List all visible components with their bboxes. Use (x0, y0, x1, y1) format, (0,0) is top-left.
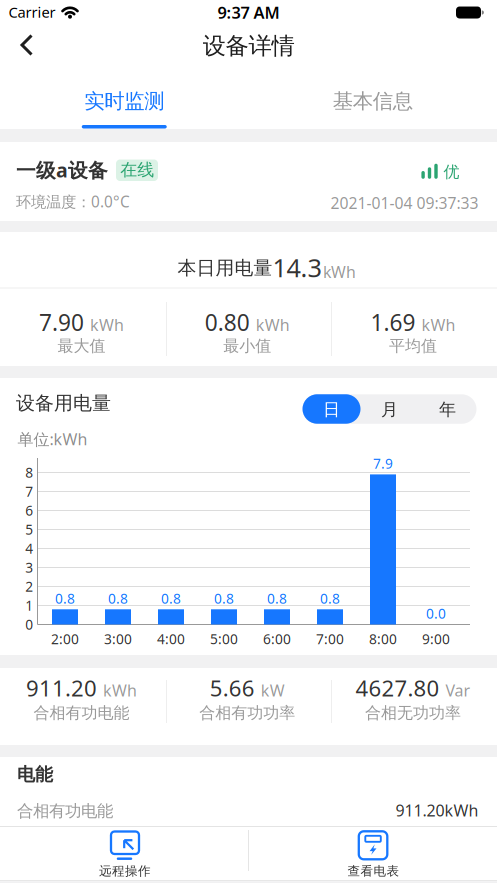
staticText: 5.66 (210, 673, 255, 703)
staticText: 3 (25, 558, 33, 577)
staticText: 日 (323, 399, 340, 420)
staticText: 14.3 (272, 250, 321, 284)
staticText: 0.8 (55, 589, 75, 608)
staticText: kWh (256, 314, 290, 336)
staticText: 远程操作 (99, 863, 151, 879)
staticText: 7.90 (39, 307, 84, 338)
button[interactable]: 年 (418, 394, 476, 424)
staticText: 2 (25, 577, 33, 596)
staticText: 0.8 (214, 589, 234, 608)
staticText: 9:00 (422, 629, 450, 648)
button[interactable]: 日 (302, 394, 360, 424)
staticText: 4627.80 (355, 673, 439, 703)
button[interactable]: Back (6, 28, 50, 62)
staticText: 一级a设备 (16, 157, 108, 183)
staticText: 3:00 (104, 629, 132, 648)
staticText: 合相有功电能 (17, 801, 113, 821)
button[interactable]: 实时监测 (0, 62, 248, 129)
button[interactable]: 月 (360, 394, 418, 424)
staticText: Var (445, 679, 470, 701)
staticText: kWh (90, 314, 124, 336)
staticText: 电能 (17, 763, 53, 786)
staticText: 5 (25, 520, 33, 539)
staticText: kW (261, 679, 285, 701)
button[interactable]: 远程操作 (0, 827, 248, 883)
staticText: 在线 (120, 159, 154, 180)
staticText: 5:00 (210, 629, 238, 648)
staticText: 0.8 (108, 589, 128, 608)
staticText: 2021-01-04 09:37:33 (330, 192, 478, 214)
staticText: 911.20kWh (395, 799, 478, 821)
staticText: 设备详情 (202, 31, 294, 61)
staticText: 0.8 (267, 589, 287, 608)
staticText: kWh (103, 679, 137, 701)
button[interactable]: 基本信息 (248, 62, 497, 129)
staticText: 4:00 (157, 629, 185, 648)
staticText: 基本信息 (333, 88, 413, 114)
staticText: 4 (25, 539, 33, 558)
staticText: 0.8 (161, 589, 181, 608)
staticText: kWh (421, 314, 455, 336)
staticText: 2:00 (51, 629, 79, 648)
button[interactable]: 查看电表 (249, 827, 497, 883)
staticText: 优 (444, 162, 460, 182)
staticText: 设备用电量 (16, 391, 111, 415)
staticText: 环境温度：0.0°C (16, 191, 130, 212)
staticText: 8 (25, 463, 33, 482)
staticText: 合相有功功率 (199, 703, 295, 723)
staticText: 本日用电量 (178, 256, 273, 280)
staticText: 6 (25, 501, 33, 520)
staticText: 平均值 (389, 336, 437, 356)
staticText: 合相无功功率 (365, 703, 461, 723)
staticText: 7 (25, 482, 33, 501)
staticText: Carrier (8, 2, 55, 22)
staticText: 最小值 (223, 336, 271, 356)
staticText: 1 (25, 596, 33, 615)
staticText: 0 (25, 615, 33, 634)
staticText: 0.0 (426, 604, 446, 623)
staticText: 7.9 (373, 454, 393, 473)
staticText: 1.69 (370, 307, 415, 338)
staticText: 6:00 (263, 629, 291, 648)
staticText: 实时监测 (84, 88, 164, 114)
staticText: 单位:kWh (17, 428, 87, 450)
staticText: 查看电表 (348, 863, 400, 879)
staticText: 年 (439, 399, 456, 420)
staticText: 0.80 (205, 307, 250, 338)
staticText: kWh (323, 261, 356, 283)
staticText: 0.8 (320, 589, 340, 608)
staticText: 月 (381, 399, 398, 420)
staticText: 7:00 (316, 629, 344, 648)
staticText: 9:37 AM (217, 1, 279, 23)
staticText: 合相有功电能 (33, 703, 129, 723)
staticText: 911.20 (26, 673, 97, 703)
staticText: 8:00 (369, 629, 397, 648)
staticText: 最大值 (57, 336, 105, 356)
